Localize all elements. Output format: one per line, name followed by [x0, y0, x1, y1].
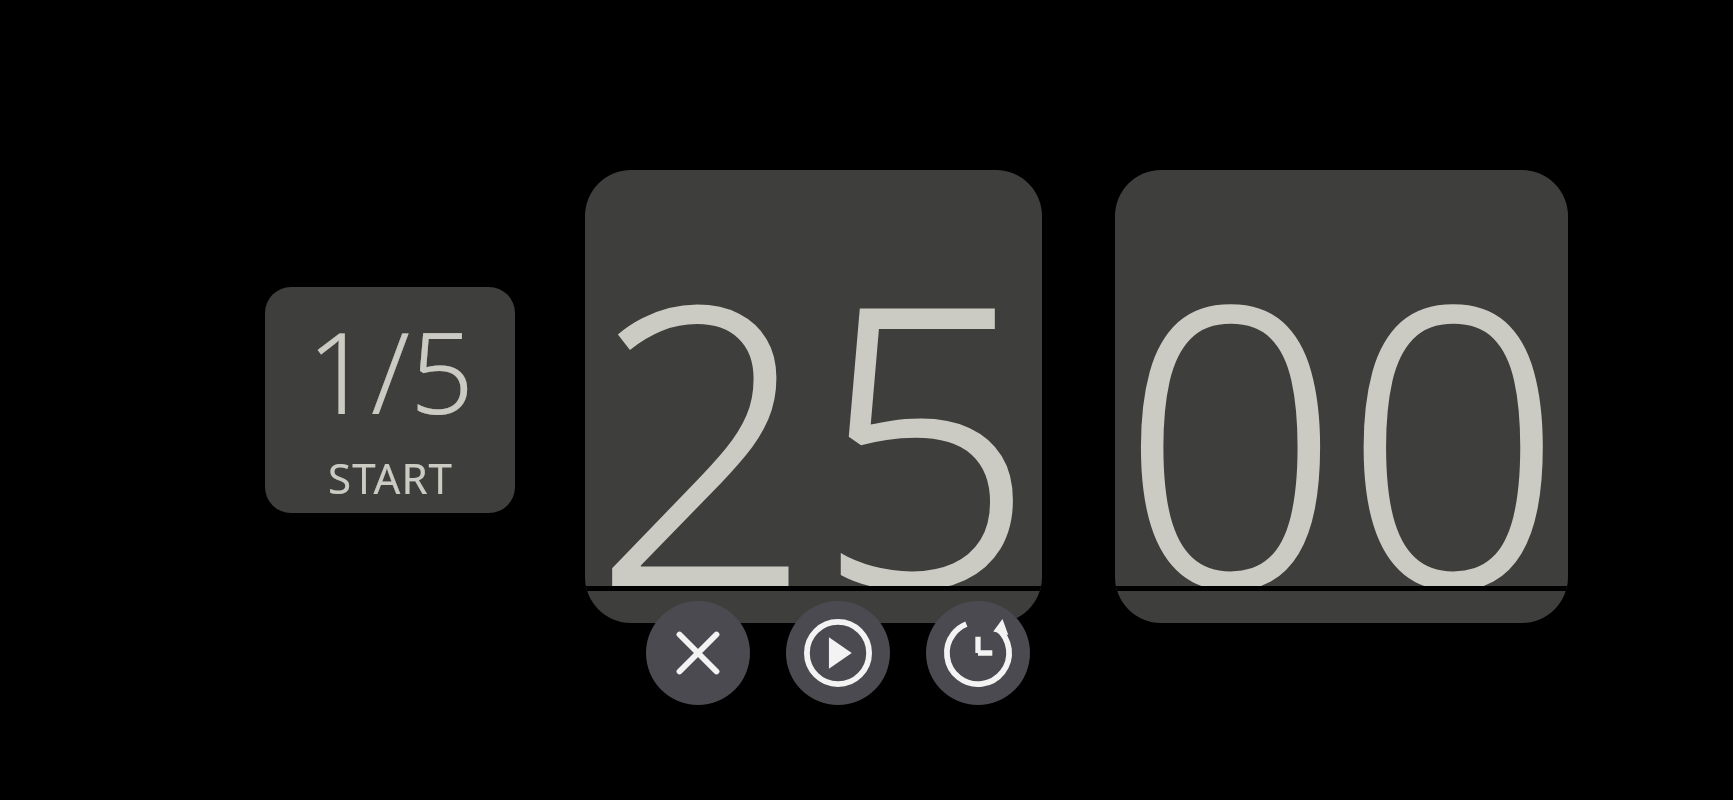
staticText: 25 — [591, 170, 1037, 623]
button[interactable]: 25 — [585, 170, 1042, 623]
staticText: 1/5 — [307, 294, 474, 447]
staticText: 00 — [1119, 170, 1565, 623]
button[interactable]: Cancel — [646, 601, 750, 705]
button[interactable]: Restart — [926, 601, 1030, 705]
button[interactable]: 1/5 — [265, 287, 515, 513]
staticText: START — [328, 449, 453, 506]
button[interactable]: 00 — [1115, 170, 1568, 623]
button[interactable]: Play — [786, 601, 890, 705]
